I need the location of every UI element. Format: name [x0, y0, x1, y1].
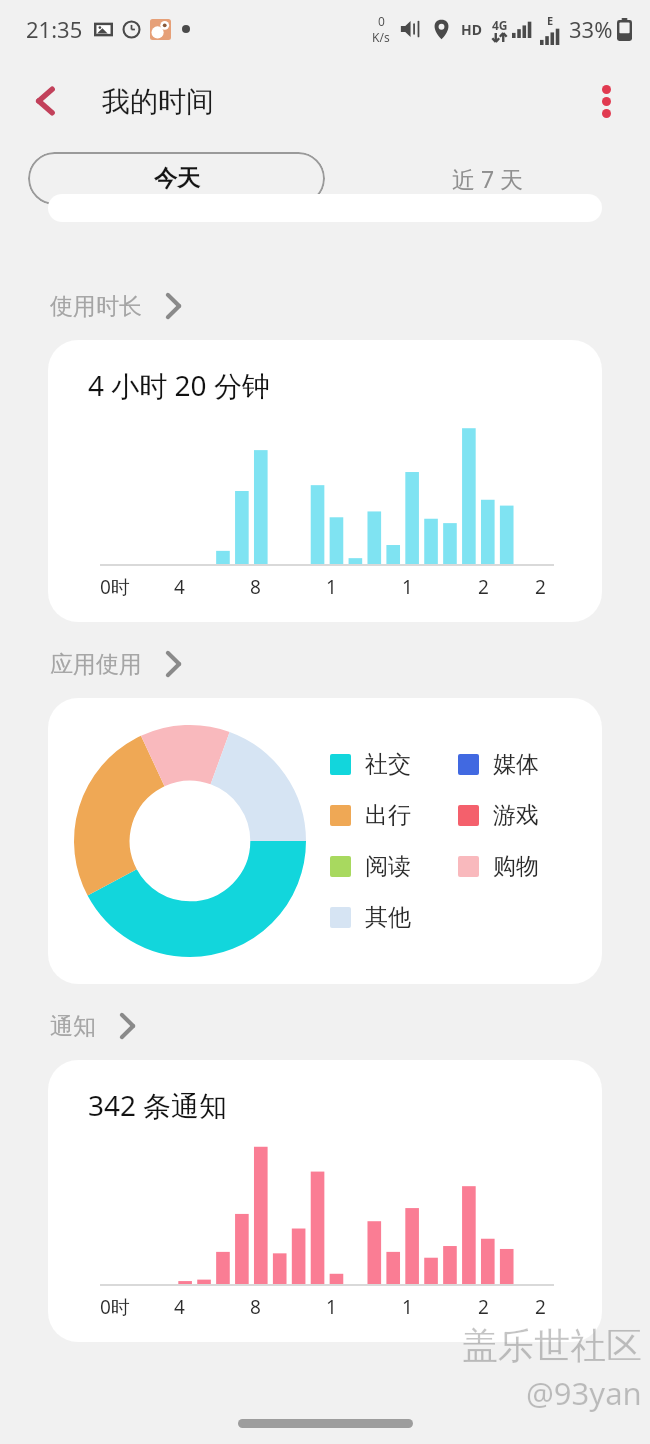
- staticText: 使用时长: [50, 292, 142, 321]
- staticText: 出行: [365, 801, 411, 830]
- staticText: 8时: [250, 574, 269, 600]
- staticText: 今天: [154, 164, 200, 193]
- staticText: 23时: [535, 1294, 554, 1320]
- staticText: 4G: [492, 17, 508, 33]
- staticText: 游戏: [493, 801, 539, 830]
- button[interactable]: 社交: [48, 698, 602, 984]
- staticText: 16时: [402, 1294, 421, 1320]
- staticText: 通知: [50, 1012, 96, 1041]
- button[interactable]: 342 条通知: [48, 1060, 602, 1342]
- staticText: 21:35: [26, 14, 83, 44]
- button[interactable]: 应用使用: [50, 644, 650, 684]
- staticText: 33%: [569, 14, 613, 44]
- staticText: 16时: [402, 574, 421, 600]
- staticText: @93yan: [526, 1372, 642, 1414]
- staticText: 4时: [174, 574, 193, 600]
- staticText: HD: [461, 20, 482, 39]
- staticText: 4时: [174, 1294, 193, 1320]
- staticText: 0: [378, 13, 385, 29]
- staticText: 342 条通知: [88, 1086, 228, 1124]
- staticText: 20时: [478, 1294, 497, 1320]
- button[interactable]: 通知: [50, 1006, 650, 1046]
- staticText: 0时: [100, 574, 118, 600]
- button[interactable]: 4 小时 20 分钟: [48, 340, 602, 622]
- staticText: K/s: [372, 29, 390, 45]
- staticText: 媒体: [493, 750, 539, 779]
- staticText: 4 小时 20 分钟: [88, 366, 270, 404]
- staticText: 23时: [535, 574, 554, 600]
- staticText: 其他: [365, 903, 411, 932]
- staticText: 盖乐世社区: [462, 1323, 642, 1368]
- button[interactable]: 返回: [18, 73, 74, 129]
- button[interactable]: 更多选项: [578, 73, 634, 129]
- staticText: 12时: [326, 574, 345, 600]
- staticText: 0时: [100, 1294, 118, 1320]
- button[interactable]: 使用时长: [50, 286, 650, 326]
- staticText: E: [547, 13, 554, 28]
- staticText: 我的时间: [102, 84, 214, 119]
- staticText: 社交: [365, 750, 411, 779]
- staticText: 购物: [493, 852, 539, 881]
- staticText: 8时: [250, 1294, 269, 1320]
- button[interactable]: 近 7 天: [325, 152, 650, 205]
- staticText: 20时: [478, 574, 497, 600]
- staticText: 12时: [326, 1294, 345, 1320]
- staticText: 近 7 天: [452, 163, 524, 194]
- staticText: 应用使用: [50, 650, 142, 679]
- button[interactable]: 今天: [28, 152, 325, 205]
- staticText: 阅读: [365, 852, 411, 881]
